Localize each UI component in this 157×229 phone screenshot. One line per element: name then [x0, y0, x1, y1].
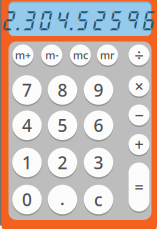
button[interactable]: 2 [46, 146, 79, 179]
staticText: m- [45, 48, 58, 62]
staticText: = [134, 176, 143, 198]
button[interactable]: ÷ [126, 42, 151, 67]
staticText: mr [100, 48, 115, 62]
button[interactable]: 4 [10, 109, 44, 142]
button[interactable]: m+ [10, 42, 35, 67]
staticText: 6 [93, 114, 103, 137]
staticText: 3 [93, 151, 103, 174]
staticText: mc [73, 48, 88, 62]
button[interactable]: 3 [82, 146, 115, 179]
button[interactable]: 5 [46, 109, 79, 142]
button[interactable]: mr [95, 42, 120, 67]
staticText: 4 [22, 114, 32, 137]
staticText: 8 [57, 78, 67, 101]
button[interactable]: 7 [10, 73, 44, 107]
button[interactable]: m- [39, 42, 64, 67]
button[interactable]: c [82, 183, 115, 216]
button[interactable]: mc [68, 42, 93, 67]
staticText: 9 [93, 78, 103, 101]
button[interactable]: − [126, 102, 151, 127]
staticText: × [134, 75, 143, 97]
staticText: + [134, 134, 143, 155]
button[interactable]: 9 [82, 73, 115, 107]
staticText: m+ [15, 48, 31, 62]
staticText: 0 [22, 188, 32, 211]
staticText: 2.304.52596 [0, 8, 155, 32]
staticText: 2 [57, 151, 67, 174]
button[interactable]: = [126, 160, 151, 213]
button[interactable]: 1 [10, 146, 44, 179]
staticText: . [60, 187, 65, 210]
button[interactable]: + [126, 132, 151, 157]
staticText: 1 [22, 151, 32, 174]
button[interactable]: × [126, 73, 151, 98]
button[interactable]: 0 [10, 183, 44, 216]
staticText: − [134, 104, 143, 126]
staticText: 5 [57, 114, 67, 137]
button[interactable]: . [46, 183, 79, 216]
staticText: 7 [22, 78, 32, 101]
staticText: c [94, 188, 103, 211]
button[interactable]: 8 [46, 73, 79, 107]
button[interactable]: 6 [82, 109, 115, 142]
staticText: ÷ [134, 44, 143, 66]
